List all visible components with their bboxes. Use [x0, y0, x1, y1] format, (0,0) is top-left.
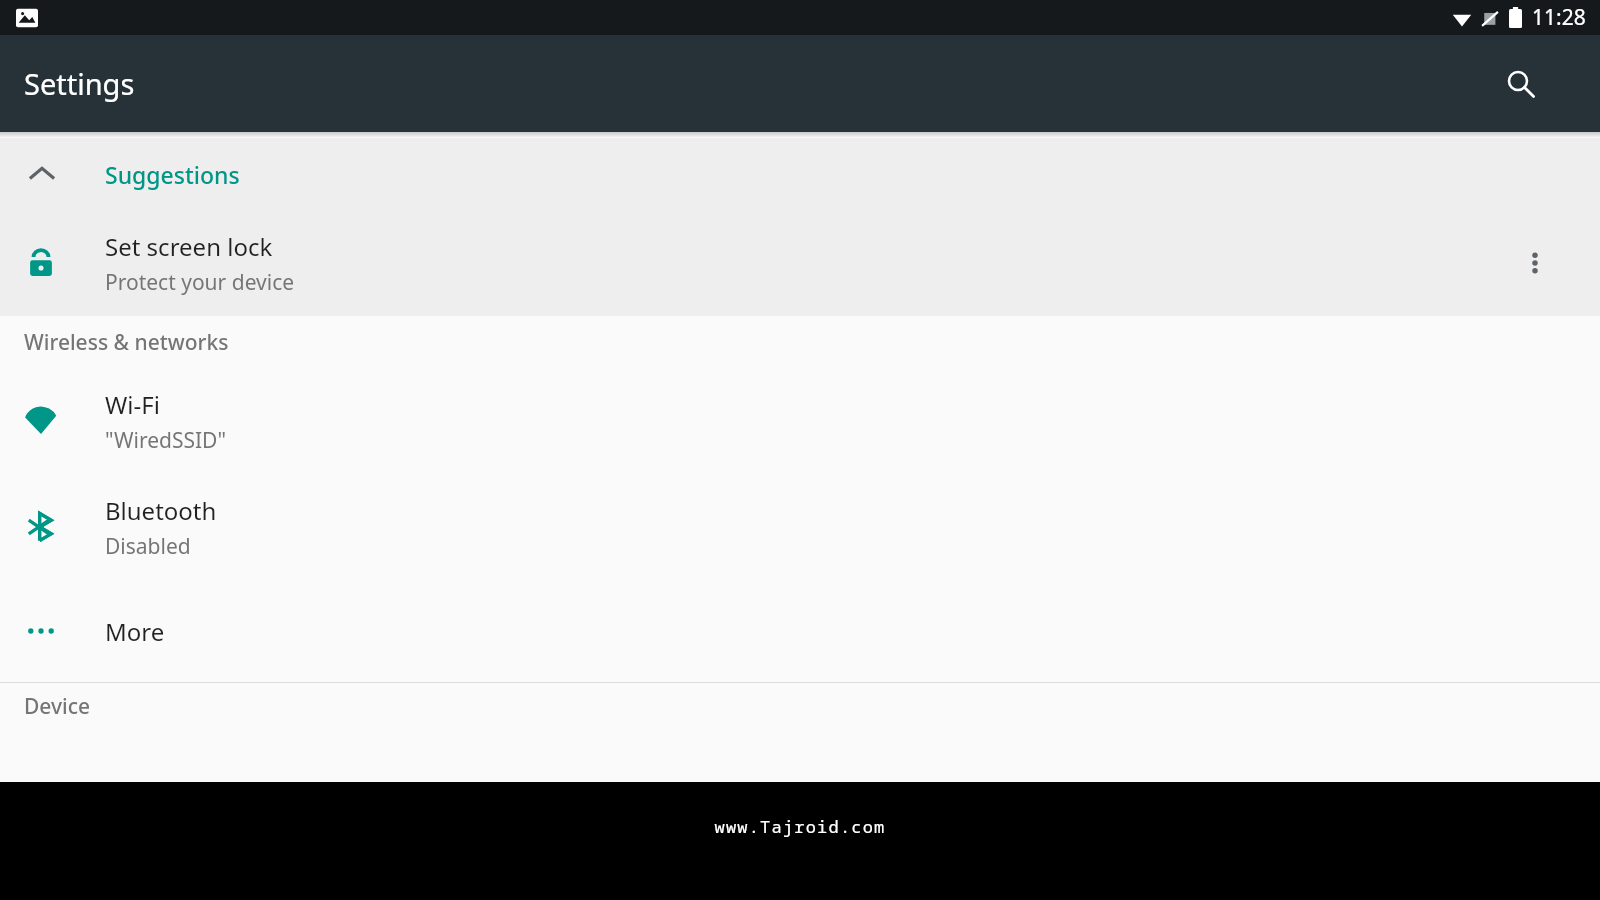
staticText: Set screen lock [105, 230, 273, 263]
staticText: Wireless & networks [24, 328, 229, 357]
staticText: Bluetooth [105, 494, 217, 527]
button[interactable]: More [0, 580, 1600, 682]
staticText: Suggestions [105, 159, 240, 190]
button[interactable]: Suggestions [0, 138, 1600, 210]
button[interactable]: More options [1511, 239, 1559, 287]
staticText: Settings [24, 64, 135, 103]
staticText: More [105, 615, 165, 648]
button[interactable]: Wi-Fi [0, 368, 1600, 474]
staticText: "WiredSSID" [105, 426, 227, 455]
staticText: Device [24, 692, 91, 721]
button[interactable]: Search [1489, 52, 1553, 116]
staticText: 11:28 [1532, 3, 1586, 32]
button[interactable]: Bluetooth [0, 474, 1600, 580]
staticText: www.Tajroid.com [0, 815, 1600, 838]
staticText: Wi-Fi [105, 388, 160, 421]
button[interactable]: Set screen lock [0, 210, 1600, 316]
staticText: Disabled [105, 532, 191, 561]
staticText: Protect your device [105, 268, 295, 297]
